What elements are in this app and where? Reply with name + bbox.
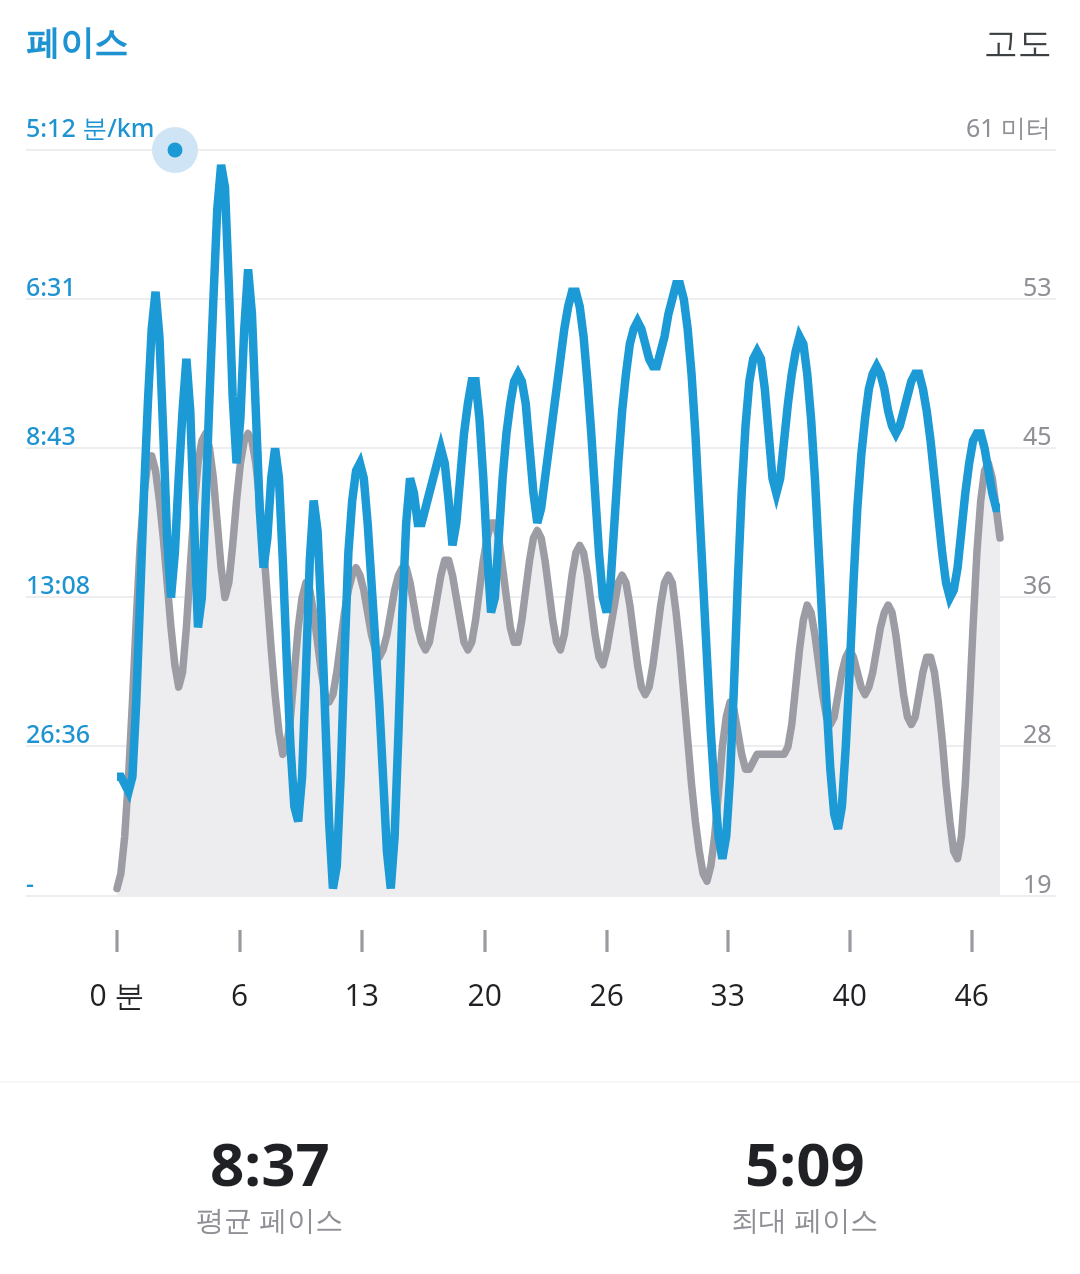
- button[interactable]: 페이스 및 고도 차트: [0, 0, 1080, 1274]
